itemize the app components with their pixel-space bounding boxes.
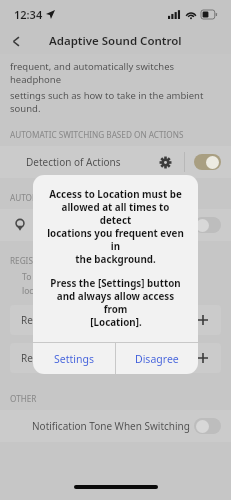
staticText: Adaptive Sound Control	[49, 33, 182, 49]
staticText: [Location].	[90, 316, 142, 329]
staticText: Access to Location must be	[49, 188, 182, 201]
staticText: Disagree	[135, 352, 179, 366]
button[interactable]: Toggle off	[194, 418, 221, 434]
staticText: OTHER	[10, 393, 37, 404]
staticText: allowed at all times to detect	[45, 201, 186, 227]
staticText: Press the [Settings] button	[50, 277, 181, 290]
staticText: frequent, and automatically switches hea…	[10, 60, 221, 86]
staticText: AUTOMATIC SWITCHING BASED ON LOCATION	[10, 192, 190, 203]
button[interactable]: Settings	[33, 343, 115, 374]
button[interactable]: Back	[4, 29, 28, 53]
staticText: locations you frequent even in	[45, 227, 186, 253]
staticText: To	[22, 271, 32, 283]
button[interactable]: Register from map	[10, 343, 221, 373]
button[interactable]: Toggle off	[194, 217, 221, 233]
button[interactable]: Toggle off	[0, 209, 231, 241]
staticText: settings such as how to take in the ambi…	[10, 89, 221, 115]
staticText: Notification Tone When Switching	[32, 419, 190, 433]
button[interactable]: Settings for detection of actions	[154, 151, 176, 173]
staticText: Re	[21, 313, 33, 327]
staticText: and always allow access from	[45, 290, 186, 316]
staticText: 12:34	[14, 7, 43, 22]
staticText: Register from map	[21, 351, 109, 365]
button[interactable]: Detection of Actions	[0, 146, 231, 178]
staticText: Detection of Actions	[26, 155, 121, 169]
staticText: REGISTERED LOCATIONS	[10, 255, 105, 266]
staticText: AUTOMATIC SWITCHING BASED ON ACTIONS	[10, 129, 184, 140]
button[interactable]: Toggle on	[194, 154, 221, 170]
staticText: loc	[22, 285, 34, 297]
staticText: the background.	[75, 253, 156, 266]
staticText: Settings	[54, 352, 94, 366]
button[interactable]: Re	[10, 305, 221, 335]
button[interactable]: Notification Tone When Switching	[0, 410, 231, 442]
button[interactable]: Disagree	[116, 343, 198, 374]
